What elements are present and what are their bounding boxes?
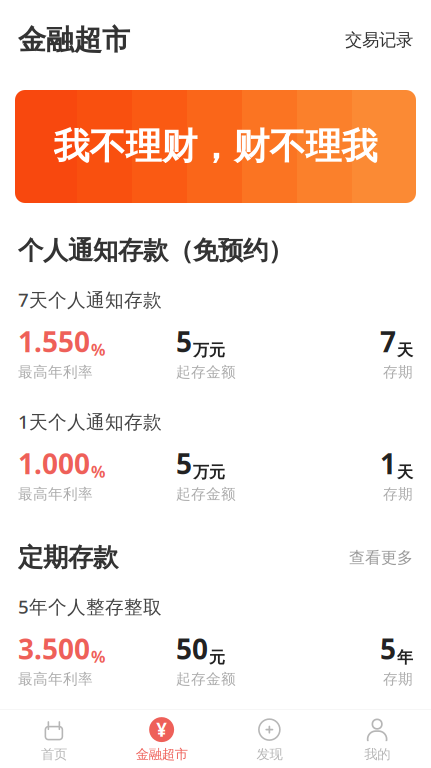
staticText: 3.500: [18, 630, 90, 667]
staticText: 5: [380, 630, 396, 667]
button[interactable]: 我的: [323, 710, 431, 768]
staticText: %: [91, 339, 105, 360]
staticText: 1.550: [18, 323, 90, 360]
staticText: 天: [397, 340, 413, 360]
staticText: 我的: [364, 746, 390, 762]
staticText: 5: [176, 323, 192, 360]
staticText: 年: [397, 647, 413, 667]
staticText: 金融超市: [18, 23, 130, 57]
staticText: 起存金额: [176, 485, 236, 503]
button[interactable]: 3年个人整存整取: [0, 703, 431, 768]
button[interactable]: 1天个人通知存款: [0, 396, 431, 518]
staticText: 元: [209, 647, 225, 667]
staticText: 存期: [383, 670, 413, 688]
button[interactable]: ¥: [108, 710, 216, 768]
staticText: 存期: [383, 363, 413, 381]
staticText: 首页: [41, 746, 67, 762]
button[interactable]: 交易记录: [345, 29, 413, 51]
staticText: 天: [397, 462, 413, 482]
staticText: %: [91, 646, 105, 667]
staticText: 5: [176, 445, 192, 482]
staticText: 50: [176, 630, 208, 667]
staticText: 定期存款: [18, 542, 118, 573]
staticText: 万元: [193, 462, 225, 482]
staticText: 我不理财，财不理我: [53, 124, 377, 169]
staticText: 3: [380, 752, 396, 768]
staticText: 最高年利率: [18, 363, 93, 381]
staticText: 1天个人通知存款: [18, 409, 162, 434]
staticText: 个人通知存款（免预约）: [18, 235, 293, 266]
staticText: 5年个人整存整取: [18, 594, 162, 619]
staticText: 最高年利率: [18, 670, 93, 688]
staticText: 1.000: [18, 445, 90, 482]
button[interactable]: 5年个人整存整取: [0, 581, 431, 703]
staticText: 50: [176, 752, 208, 768]
staticText: 最高年利率: [18, 485, 93, 503]
staticText: 7天个人通知存款: [18, 287, 162, 312]
staticText: 金融超市: [136, 746, 188, 762]
button[interactable]: 我不理财，财不理我: [15, 90, 416, 203]
button[interactable]: 首页: [0, 710, 108, 768]
staticText: 1: [380, 445, 396, 482]
button[interactable]: 发现: [215, 710, 323, 768]
staticText: 查看更多: [349, 548, 413, 567]
staticText: 交易记录: [345, 29, 413, 51]
staticText: %: [91, 461, 105, 482]
staticText: 7: [380, 323, 396, 360]
button[interactable]: 查看更多: [349, 548, 413, 567]
staticText: 3.500: [18, 752, 90, 768]
staticText: 万元: [193, 340, 225, 360]
staticText: 起存金额: [176, 670, 236, 688]
staticText: 3年个人整存整取: [18, 716, 162, 741]
staticText: 存期: [383, 485, 413, 503]
button[interactable]: 7天个人通知存款: [0, 274, 431, 396]
staticText: 发现: [256, 746, 282, 762]
staticText: ¥: [156, 717, 167, 742]
staticText: 起存金额: [176, 363, 236, 381]
